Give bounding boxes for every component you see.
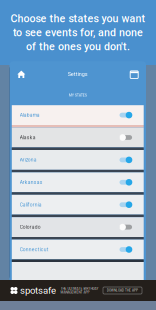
button[interactable]: spotsafe [10,285,56,296]
staticText: spotsafe [20,285,56,296]
button[interactable]: DOWNLOAD THE APP [103,287,142,294]
staticText: Connecticut [20,247,49,252]
staticText: Alabama [20,112,40,118]
button[interactable]: Arizona [12,150,144,170]
staticText: THE ULTIMATE BIRTHDAY MANAGEMENT APP [60,287,98,294]
staticText: Settings [68,71,88,77]
staticText: to see events for, and none [13,26,143,39]
button[interactable]: Arkansas [12,172,144,192]
button[interactable]: Alaska [12,128,144,147]
staticText: of the ones you don't. [26,40,130,53]
staticText: DOWNLOAD THE APP [107,289,138,292]
button[interactable]: Colorado [12,217,144,237]
staticText: Arizona [20,157,37,163]
button[interactable]: Alabama [12,105,144,125]
staticText: Choose the states you want [10,12,145,25]
button[interactable]: Home [13,66,29,82]
staticText: Colorado [20,224,41,230]
button[interactable]: Connecticut [12,240,144,259]
staticText: MY STATES [69,93,87,97]
button[interactable]: Calendar [126,66,142,82]
staticText: Arkansas [20,179,43,185]
button[interactable]: California [12,195,144,215]
staticText: California [20,202,42,208]
staticText: Alaska [20,135,36,140]
